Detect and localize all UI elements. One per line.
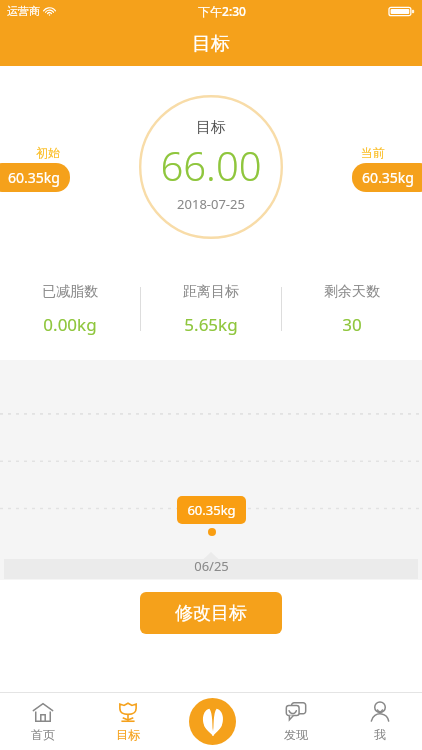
staticText: 首页: [31, 727, 55, 742]
button[interactable]: 首页: [0, 695, 85, 748]
button[interactable]: Add record: [189, 698, 236, 745]
staticText: 修改目标: [175, 602, 247, 625]
button[interactable]: 修改目标: [140, 592, 282, 634]
staticText: 60.35kg: [8, 168, 60, 187]
staticText: 60.35kg: [362, 168, 414, 187]
staticText: 距离目标: [183, 283, 239, 301]
button[interactable]: 我: [338, 695, 422, 748]
staticText: 06/25: [194, 557, 229, 575]
staticText: 下午2:30: [198, 3, 246, 19]
button[interactable]: 距离目标: [141, 277, 281, 342]
staticText: 目标: [196, 118, 226, 137]
button[interactable]: 剩余天数: [282, 277, 422, 342]
button[interactable]: 发现: [254, 695, 338, 748]
button[interactable]: 60.35kg: [352, 163, 422, 192]
staticText: 运营商: [7, 4, 40, 18]
staticText: 初始: [36, 145, 60, 160]
staticText: 0.00kg: [43, 313, 97, 336]
staticText: 当前: [361, 145, 385, 160]
staticText: 发现: [284, 727, 308, 742]
staticText: 66.00: [160, 138, 262, 192]
button[interactable]: 60.35kg: [0, 163, 70, 192]
staticText: 60.35kg: [187, 501, 236, 519]
staticText: 我: [374, 727, 386, 742]
staticText: 已减脂数: [42, 283, 98, 301]
staticText: 目标: [116, 727, 140, 742]
staticText: 目标: [192, 32, 230, 56]
button[interactable]: 60.35kg: [177, 496, 246, 524]
staticText: 2018-07-25: [177, 195, 245, 213]
staticText: 剩余天数: [324, 283, 380, 301]
button[interactable]: 目标: [85, 695, 170, 748]
button[interactable]: 已减脂数: [0, 277, 140, 342]
staticText: 5.65kg: [184, 313, 238, 336]
staticText: 30: [342, 313, 362, 336]
